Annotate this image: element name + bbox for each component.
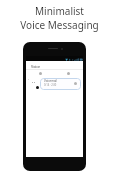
button[interactable]: Inbox <box>26 71 54 75</box>
button[interactable]: Voicemail <box>40 78 81 90</box>
staticText: 0:14 · 2:30 <box>44 83 57 87</box>
button[interactable]: Play voice message <box>36 86 39 89</box>
staticText: Voice Messaging <box>20 18 99 32</box>
staticText: Voicemail <box>44 79 58 83</box>
staticText: Minimalist <box>35 4 84 18</box>
button[interactable]: Archived <box>54 71 83 75</box>
button[interactable]: Voice <box>31 63 41 69</box>
staticText: Voice <box>31 64 41 69</box>
